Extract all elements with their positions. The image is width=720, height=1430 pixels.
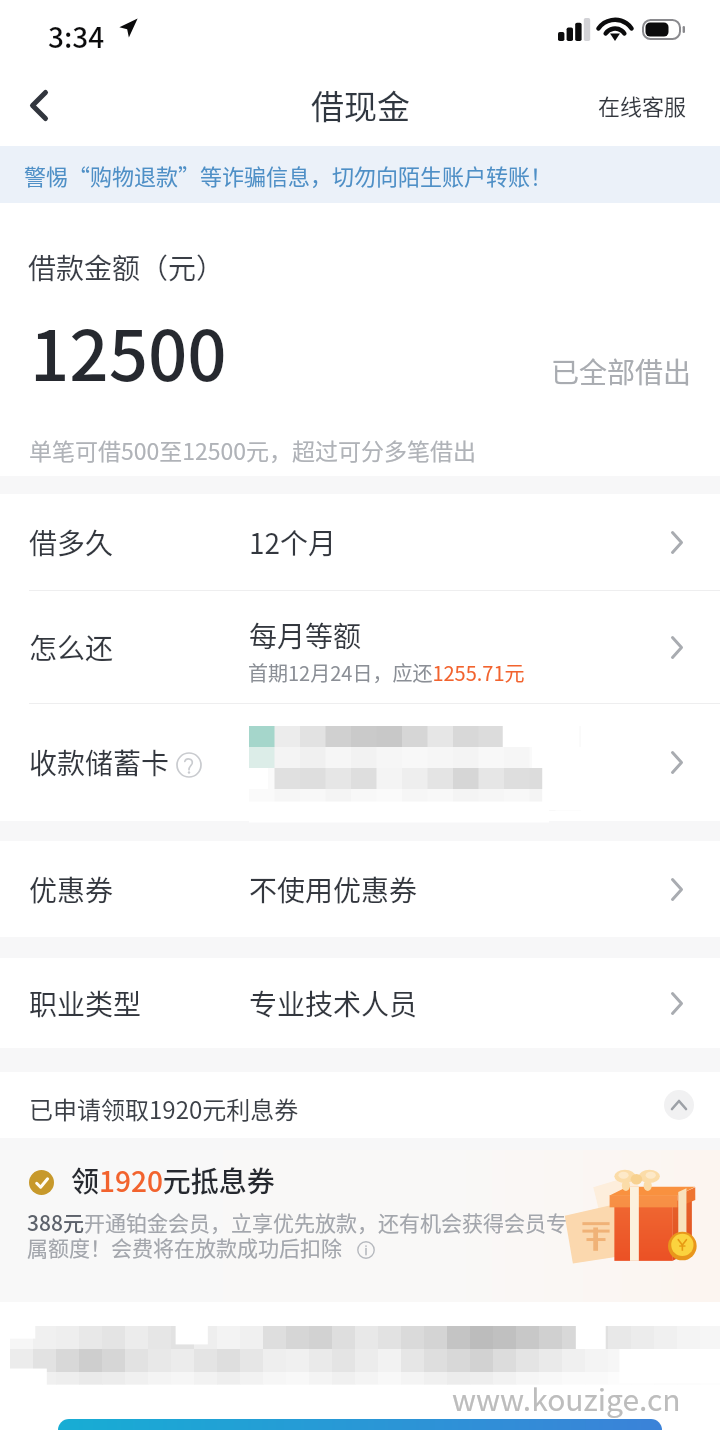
staticText: 借现金 — [311, 81, 410, 129]
button[interactable]: 领1920元抵息券 — [0, 1150, 720, 1302]
staticText: 12500 — [30, 301, 227, 401]
staticText: 借多久 — [29, 522, 114, 563]
staticText: 在线客服 — [598, 89, 687, 121]
staticText: 不使用优惠券 — [249, 869, 418, 910]
button[interactable]: 优惠券 — [0, 841, 720, 937]
button[interactable]: 借多久 — [0, 494, 720, 590]
staticText: www.kouzige.cn — [452, 1376, 681, 1419]
other: Collapse — [664, 1090, 694, 1120]
staticText: 收款储蓄卡 — [29, 742, 170, 783]
button[interactable]: 职业类型 — [0, 958, 720, 1048]
staticText: 优惠券 — [29, 869, 114, 910]
staticText: 首期12月24日，应还1255.71元 — [248, 658, 525, 687]
button[interactable]: Back — [0, 64, 86, 146]
staticText: 单笔可借500至12500元，超过可分多笔借出 — [29, 433, 477, 466]
button[interactable]: 在线客服 — [576, 73, 720, 137]
button[interactable] — [58, 1419, 662, 1430]
staticText: 怎么还 — [29, 627, 114, 668]
staticText: 388元开通铂金会员，立享优先放款，还有机会获得会员专属额度！会费将在放款成功后… — [27, 1207, 575, 1262]
button[interactable]: 怎么还 — [0, 591, 720, 703]
staticText: 每月等额 — [249, 615, 362, 656]
staticText: 警惕“购物退款”等诈骗信息，切勿向陌生账户转账！ — [24, 159, 553, 191]
staticText: 借款金额（元） — [28, 247, 225, 288]
button[interactable]: 已申请领取1920元利息券 — [0, 1072, 720, 1138]
staticText: 领1920元抵息券 — [71, 1160, 275, 1201]
staticText: 职业类型 — [29, 983, 142, 1024]
staticText: 专业技术人员 — [249, 983, 418, 1024]
staticText: 3:34 — [48, 16, 105, 57]
staticText: 12个月 — [249, 522, 337, 563]
staticText: 已申请领取1920元利息券 — [29, 1091, 299, 1126]
button[interactable]: 收款储蓄卡 — [0, 704, 720, 821]
staticText: 已全部借出 — [551, 351, 692, 392]
